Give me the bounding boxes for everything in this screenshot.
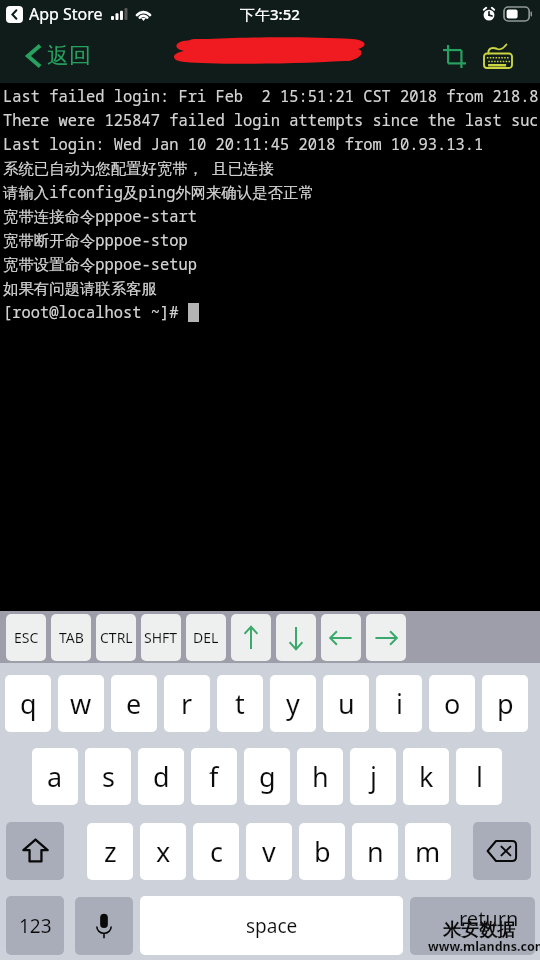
staticText: 下午3:52 xyxy=(240,4,300,24)
button[interactable]: k xyxy=(403,748,449,805)
button[interactable]: Microphone xyxy=(75,897,133,955)
staticText: j xyxy=(370,758,377,795)
button[interactable]: n xyxy=(352,823,398,880)
button[interactable]: p xyxy=(482,675,528,732)
staticText: 米安数据 xyxy=(443,919,515,942)
button[interactable]: Arrow right xyxy=(366,614,406,661)
staticText: www.mlandns.com xyxy=(428,938,540,955)
button[interactable]: h xyxy=(297,748,343,805)
button[interactable]: s xyxy=(85,748,131,805)
button[interactable]: Crop xyxy=(434,34,474,78)
staticText: 请输入ifconfig及ping外网来确认是否正常 xyxy=(3,182,314,203)
staticText: c xyxy=(210,833,223,870)
staticText: l xyxy=(476,758,483,795)
staticText: e xyxy=(126,685,142,722)
button[interactable]: l xyxy=(456,748,502,805)
staticText: return xyxy=(459,905,519,932)
button[interactable]: Backspace xyxy=(473,822,531,880)
button[interactable]: o xyxy=(429,675,475,732)
staticText: f xyxy=(209,758,219,795)
staticText: q xyxy=(20,685,37,722)
button[interactable]: return xyxy=(410,897,535,955)
staticText: x xyxy=(156,833,171,870)
staticText: y xyxy=(286,685,300,722)
button[interactable]: t xyxy=(217,675,263,732)
button[interactable]: f xyxy=(191,748,237,805)
staticText: v xyxy=(262,833,276,870)
button[interactable]: u xyxy=(323,675,369,732)
staticText: 如果有问题请联系客服 xyxy=(3,279,157,298)
button[interactable]: Keyboard xyxy=(476,34,520,78)
staticText: a xyxy=(47,758,63,795)
button[interactable]: m xyxy=(405,823,451,880)
staticText: 123 xyxy=(19,913,52,939)
staticText: r xyxy=(181,685,193,722)
button[interactable]: q xyxy=(5,675,51,732)
staticText: DEL xyxy=(193,628,219,647)
staticText: t xyxy=(235,685,245,722)
staticText: Last failed login: Fri Feb 2 15:51:21 CS… xyxy=(3,86,539,107)
staticText: 系统已自动为您配置好宽带， 且已连接 xyxy=(3,158,274,179)
staticText: o xyxy=(444,685,461,722)
button[interactable]: 123 xyxy=(6,896,64,955)
button[interactable]: 返回 xyxy=(0,28,101,83)
button[interactable]: z xyxy=(87,823,133,880)
button[interactable]: Arrow down xyxy=(276,614,316,661)
staticText: z xyxy=(104,833,117,870)
staticText: h xyxy=(312,758,329,795)
button[interactable]: SHFT xyxy=(141,614,181,661)
button[interactable]: ESC xyxy=(6,614,46,661)
button[interactable]: space xyxy=(140,896,403,955)
staticText: space xyxy=(246,913,298,939)
staticText: There were 125847 failed login attempts … xyxy=(3,110,539,131)
button[interactable]: Arrow left xyxy=(321,614,361,661)
staticText: [root@localhost ~]# xyxy=(3,302,188,323)
button[interactable]: w xyxy=(58,675,104,732)
button[interactable]: g xyxy=(244,748,290,805)
staticText: 宽带断开命令pppoe-stop xyxy=(3,230,188,251)
staticText: ESC xyxy=(14,628,39,647)
button[interactable]: r xyxy=(164,675,210,732)
button[interactable]: TAB xyxy=(51,614,91,661)
staticText: s xyxy=(102,758,115,795)
staticText: p xyxy=(497,685,514,722)
staticText: m xyxy=(415,833,441,870)
button[interactable]: Shift xyxy=(6,822,64,880)
staticText: d xyxy=(153,758,170,795)
staticText: 宽带设置命令pppoe-setup xyxy=(3,254,197,275)
button[interactable]: DEL xyxy=(186,614,226,661)
button[interactable]: v xyxy=(246,823,292,880)
button[interactable]: CTRL xyxy=(96,614,136,661)
staticText: SHFT xyxy=(144,628,178,647)
button[interactable]: Arrow up xyxy=(231,614,271,661)
staticText: b xyxy=(314,833,331,870)
staticText: Last login: Wed Jan 10 20:11:45 2018 fro… xyxy=(3,134,484,155)
staticText: k xyxy=(419,758,434,795)
button[interactable]: i xyxy=(376,675,422,732)
staticText: n xyxy=(367,833,384,870)
button[interactable]: x xyxy=(140,823,186,880)
staticText: w xyxy=(70,685,92,722)
staticText: App Store xyxy=(29,3,103,25)
button[interactable]: y xyxy=(270,675,316,732)
button[interactable]: e xyxy=(111,675,157,732)
button[interactable]: d xyxy=(138,748,184,805)
staticText: 返回 xyxy=(47,42,91,70)
button[interactable]: j xyxy=(350,748,396,805)
button[interactable]: a xyxy=(32,748,78,805)
button[interactable]: c xyxy=(193,823,239,880)
button[interactable]: b xyxy=(299,823,345,880)
staticText: TAB xyxy=(59,628,84,647)
staticText: i xyxy=(396,685,403,722)
staticText: u xyxy=(338,685,355,722)
staticText: g xyxy=(259,758,276,795)
staticText: 宽带连接命令pppoe-start xyxy=(3,206,197,227)
staticText: CTRL xyxy=(100,628,133,647)
